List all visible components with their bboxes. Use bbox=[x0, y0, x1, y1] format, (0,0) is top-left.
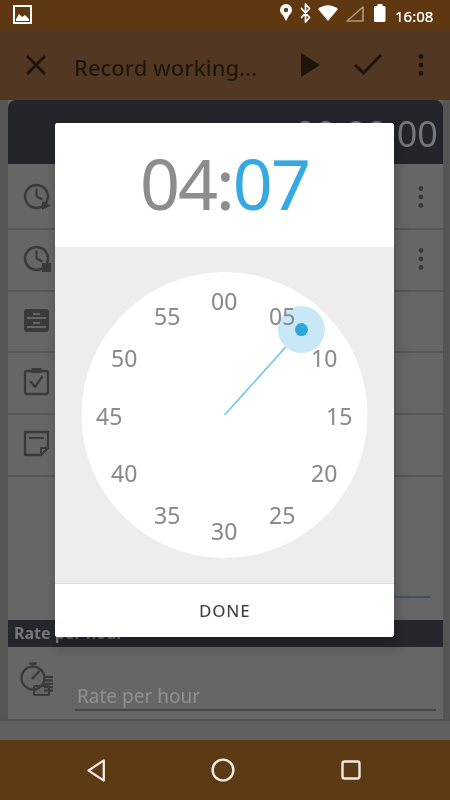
staticText: 20 bbox=[311, 457, 338, 487]
staticText: 10 bbox=[311, 342, 338, 372]
staticText: 15 bbox=[326, 400, 353, 430]
staticText: Rate per hour bbox=[14, 622, 124, 644]
staticText: 04:07 bbox=[140, 135, 309, 230]
staticText: 16:08 bbox=[395, 6, 434, 26]
staticText: 00:00:00 bbox=[295, 109, 438, 158]
button[interactable] bbox=[346, 43, 390, 87]
staticText: 40 bbox=[111, 457, 138, 487]
button[interactable]: DONE bbox=[55, 584, 394, 637]
button[interactable] bbox=[288, 43, 332, 87]
button[interactable] bbox=[321, 748, 381, 792]
staticText: 45 bbox=[96, 400, 123, 430]
staticText: 35 bbox=[154, 499, 181, 529]
button[interactable] bbox=[193, 748, 253, 792]
staticText: Rate per hour bbox=[77, 683, 201, 709]
staticText: 30 bbox=[211, 515, 238, 545]
staticText: 05 bbox=[269, 300, 296, 330]
button[interactable] bbox=[66, 748, 126, 792]
button[interactable] bbox=[399, 43, 443, 87]
staticText: 00 bbox=[211, 285, 238, 315]
staticText: 25 bbox=[269, 499, 296, 529]
staticText: 50 bbox=[111, 342, 138, 372]
staticText: Record working… bbox=[74, 52, 257, 82]
staticText: DONE bbox=[199, 599, 251, 622]
staticText: 55 bbox=[154, 300, 181, 330]
button[interactable] bbox=[18, 43, 54, 87]
